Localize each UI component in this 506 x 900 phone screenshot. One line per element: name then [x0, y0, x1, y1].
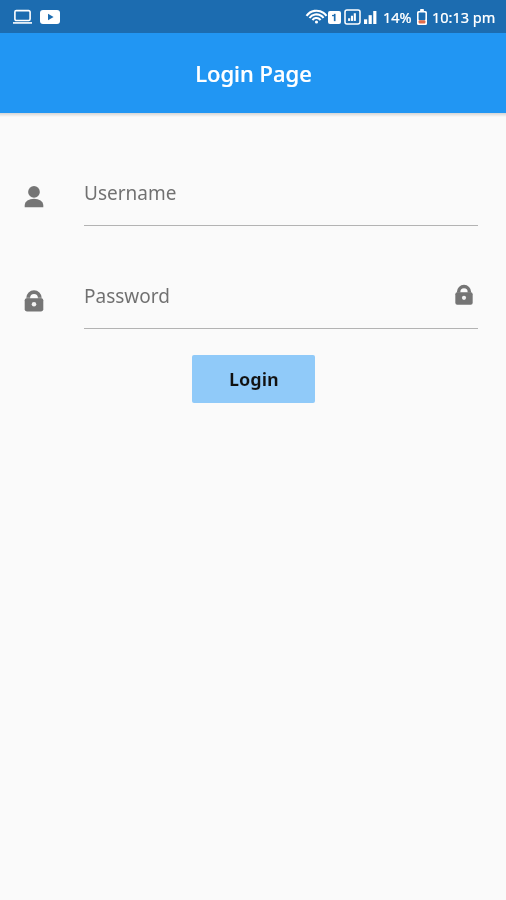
button[interactable]: Username	[0, 160, 506, 226]
staticText: Password	[84, 283, 170, 309]
staticText: 10:13 pm	[432, 7, 496, 27]
staticText: Username	[84, 180, 177, 206]
button[interactable]: Password	[0, 263, 506, 329]
staticText: Login	[229, 367, 279, 392]
button[interactable]: Toggle password visibility	[450, 280, 478, 308]
staticText: 14%	[383, 7, 412, 27]
button[interactable]: Login	[192, 355, 315, 403]
staticText: Login Page	[195, 58, 312, 88]
